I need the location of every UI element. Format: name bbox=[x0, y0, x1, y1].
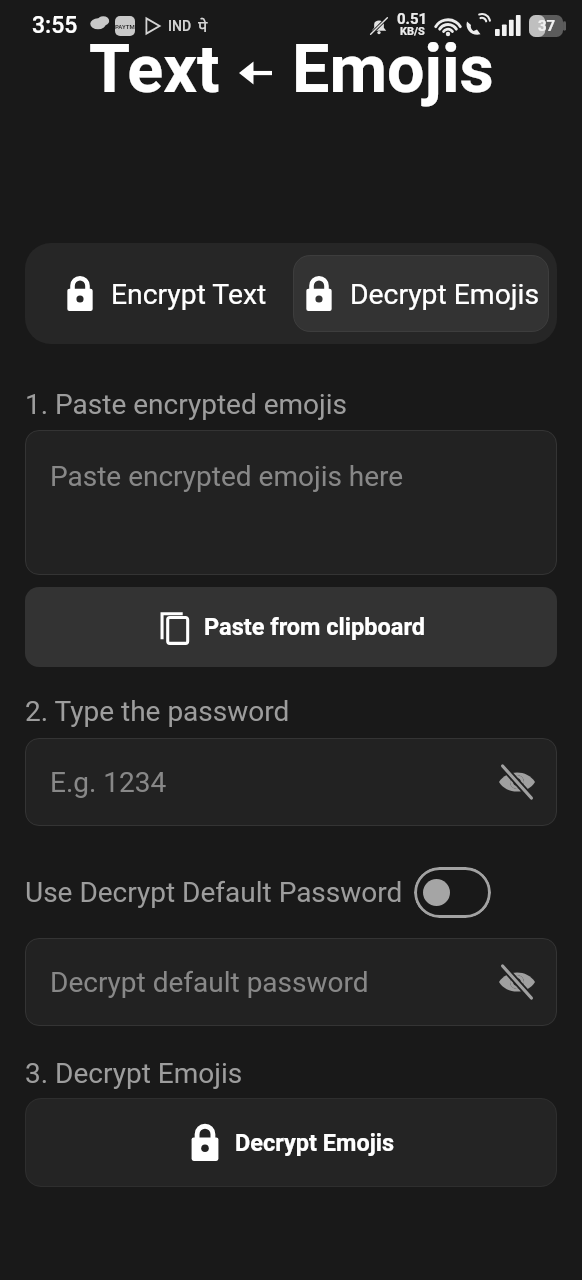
staticText: E.g. 1234 bbox=[50, 766, 167, 799]
button[interactable]: Encrypt Text bbox=[37, 255, 293, 332]
staticText: Use Decrypt Default Password bbox=[25, 876, 403, 909]
staticText: IND bbox=[168, 18, 192, 34]
button[interactable]: E.g. 1234 bbox=[25, 738, 557, 826]
button[interactable]: Paste encrypted emojis here bbox=[25, 430, 557, 575]
button[interactable]: Paste from clipboard bbox=[25, 587, 557, 667]
button[interactable]: Show password bbox=[493, 758, 541, 806]
staticText: KB/S bbox=[400, 25, 425, 38]
staticText: Paste encrypted emojis here bbox=[50, 460, 404, 493]
button[interactable]: Decrypt Emojis bbox=[25, 1098, 557, 1187]
staticText: Text bbox=[89, 30, 220, 108]
staticText: Decrypt default password bbox=[50, 966, 369, 999]
button[interactable]: Decrypt default password bbox=[25, 938, 557, 1026]
staticText: 37 bbox=[538, 17, 556, 35]
staticText: 3:55 bbox=[32, 12, 78, 39]
staticText: PAYTM bbox=[115, 23, 135, 30]
staticText: Decrypt Emojis bbox=[350, 278, 540, 311]
staticText: Emojis bbox=[292, 30, 494, 108]
staticText: Encrypt Text bbox=[111, 278, 267, 311]
staticText: Paste from clipboard bbox=[204, 613, 426, 641]
staticText: 0.51 bbox=[397, 10, 428, 28]
staticText: Decrypt Emojis bbox=[235, 1129, 395, 1157]
staticText: 3. Decrypt Emojis bbox=[25, 1057, 243, 1090]
button[interactable]: Decrypt Emojis bbox=[293, 255, 549, 332]
button[interactable]: Show password bbox=[493, 958, 541, 1006]
button[interactable]: Use Decrypt Default Password toggle bbox=[414, 867, 491, 918]
staticText: पे bbox=[198, 15, 208, 37]
staticText: 1. Paste encrypted emojis bbox=[25, 388, 347, 421]
staticText: 2. Type the password bbox=[25, 695, 290, 728]
